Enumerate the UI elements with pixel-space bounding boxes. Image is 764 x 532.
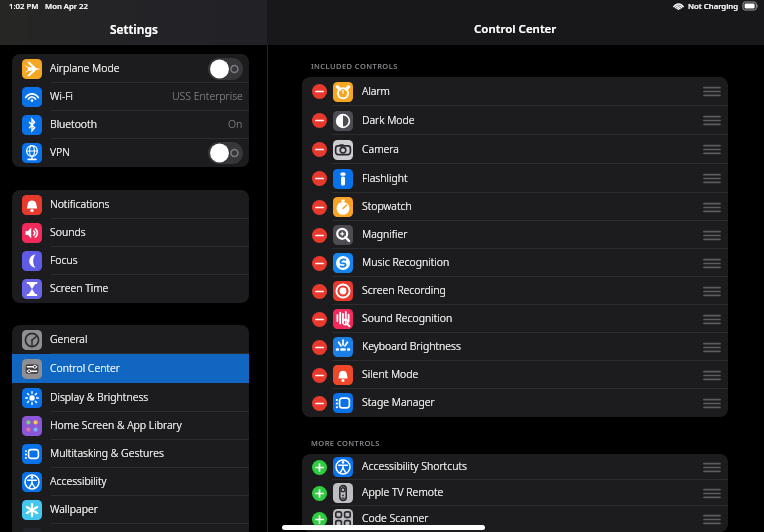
staticText: Wallpaper — [50, 502, 98, 516]
staticText: Stopwatch — [362, 199, 412, 213]
button[interactable]: Sounds — [12, 219, 249, 247]
button[interactable]: Home Screen & App Library — [12, 412, 249, 440]
button[interactable]: Remove Dark Mode — [302, 106, 728, 135]
button[interactable]: Wallpaper — [12, 496, 249, 524]
button[interactable]: Add Code Scanner — [312, 512, 327, 527]
staticText: Music Recognition — [362, 255, 450, 269]
button[interactable]: Remove Magnifier — [312, 228, 327, 243]
button[interactable]: Add Accessibility Shortcuts — [302, 454, 728, 480]
button[interactable]: Toggle — [208, 58, 243, 80]
button[interactable]: Remove Camera — [302, 135, 728, 164]
staticText: Airplane Mode — [50, 61, 120, 75]
button[interactable]: Airplane Mode — [12, 54, 249, 83]
staticText: Settings — [110, 21, 158, 37]
button[interactable]: Screen Time — [12, 275, 249, 303]
staticText: Display & Brightness — [50, 390, 149, 404]
button[interactable]: Remove Stopwatch — [302, 193, 728, 221]
button[interactable]: Add Code Scanner — [302, 506, 728, 532]
button[interactable]: Remove Stopwatch — [312, 200, 327, 215]
staticText: Focus — [50, 253, 78, 267]
staticText: Dark Mode — [362, 113, 415, 127]
staticText: 1:02 PM — [9, 1, 39, 12]
staticText: MORE CONTROLS — [311, 438, 380, 448]
button[interactable]: Remove Keyboard Brightness — [302, 333, 728, 361]
button[interactable]: Reorder Dark Mode — [704, 116, 720, 125]
staticText: Not Charging — [688, 1, 739, 12]
button[interactable]: Display & Brightness — [12, 383, 249, 412]
button[interactable]: Remove Flashlight — [302, 164, 728, 193]
button[interactable]: Reorder Keyboard Brightness — [704, 343, 720, 352]
button[interactable]: Reorder Magnifier — [704, 231, 720, 240]
staticText: Code Scanner — [362, 511, 429, 525]
staticText: Control Center — [474, 21, 557, 37]
staticText: Notifications — [50, 197, 110, 211]
staticText: INCLUDED CONTROLS — [311, 61, 398, 71]
staticText: Sounds — [50, 225, 86, 239]
button[interactable]: Reorder Code Scanner — [704, 515, 720, 524]
button[interactable]: Reorder Stopwatch — [704, 203, 720, 212]
staticText: General — [50, 332, 88, 346]
staticText: Bluetooth — [50, 117, 97, 131]
staticText: Mon Apr 22 — [45, 1, 89, 12]
button[interactable]: Remove Dark Mode — [312, 113, 327, 128]
button[interactable]: Bluetooth — [12, 111, 249, 139]
button[interactable]: Remove Stage Manager — [312, 396, 327, 411]
staticText: Home Screen & App Library — [50, 418, 182, 432]
button[interactable]: Remove Screen Recording — [302, 277, 728, 305]
staticText: VPN — [50, 145, 70, 159]
staticText: Keyboard Brightness — [362, 339, 461, 353]
button[interactable]: Remove Alarm — [302, 77, 728, 106]
button[interactable]: Remove Alarm — [312, 84, 327, 99]
button[interactable]: Focus — [12, 247, 249, 275]
button[interactable]: VPN — [12, 139, 249, 167]
button[interactable]: Remove Camera — [312, 142, 327, 157]
staticText: Multitasking & Gestures — [50, 446, 164, 460]
button[interactable]: Add Apple TV Remote — [312, 486, 327, 501]
button[interactable]: Remove Sound Recognition — [312, 312, 327, 327]
staticText: Wi-Fi — [50, 89, 73, 103]
button[interactable]: Multitasking & Gestures — [12, 440, 249, 468]
staticText: Stage Manager — [362, 395, 435, 409]
staticText: USS Enterprise — [172, 89, 243, 103]
button[interactable]: Accessibility — [12, 468, 249, 496]
button[interactable]: General — [12, 325, 249, 354]
button[interactable]: Remove Flashlight — [312, 171, 327, 186]
button[interactable]: Reorder Silent Mode — [704, 371, 720, 380]
button[interactable]: Reorder Apple TV Remote — [704, 489, 720, 498]
staticText: Screen Time — [50, 281, 109, 295]
button[interactable]: Toggle — [208, 142, 243, 164]
button[interactable]: Reorder Sound Recognition — [704, 315, 720, 324]
button[interactable]: Reorder Flashlight — [704, 174, 720, 183]
button[interactable]: Remove Silent Mode — [302, 361, 728, 389]
button[interactable]: Reorder Camera — [704, 145, 720, 154]
staticText: Silent Mode — [362, 367, 419, 381]
staticText: On — [228, 117, 243, 131]
staticText: Camera — [362, 142, 399, 156]
button[interactable]: Control Center — [12, 354, 249, 383]
button[interactable]: Notifications — [12, 190, 249, 219]
staticText: Accessibility Shortcuts — [362, 459, 467, 473]
button[interactable]: Remove Music Recognition — [302, 249, 728, 277]
staticText: Apple TV Remote — [362, 485, 444, 499]
staticText: Flashlight — [362, 171, 408, 185]
button[interactable]: Remove Stage Manager — [302, 389, 728, 417]
staticText: Screen Recording — [362, 283, 446, 297]
button[interactable]: Reorder Alarm — [704, 87, 720, 96]
button[interactable]: Remove Magnifier — [302, 221, 728, 249]
button[interactable]: Remove Screen Recording — [312, 284, 327, 299]
button[interactable]: Remove Music Recognition — [312, 256, 327, 271]
button[interactable]: Add Apple TV Remote — [302, 480, 728, 506]
staticText: Accessibility — [50, 474, 107, 488]
staticText: Sound Recognition — [362, 311, 453, 325]
button[interactable]: Wi-Fi — [12, 83, 249, 111]
button[interactable]: Reorder Screen Recording — [704, 287, 720, 296]
button[interactable]: Remove Silent Mode — [312, 368, 327, 383]
button[interactable]: Remove Keyboard Brightness — [312, 340, 327, 355]
button[interactable]: Reorder Accessibility Shortcuts — [704, 463, 720, 472]
button[interactable]: Reorder Music Recognition — [704, 259, 720, 268]
button[interactable]: Remove Sound Recognition — [302, 305, 728, 333]
button[interactable]: Add Accessibility Shortcuts — [312, 460, 327, 475]
button[interactable]: Reorder Stage Manager — [704, 399, 720, 408]
